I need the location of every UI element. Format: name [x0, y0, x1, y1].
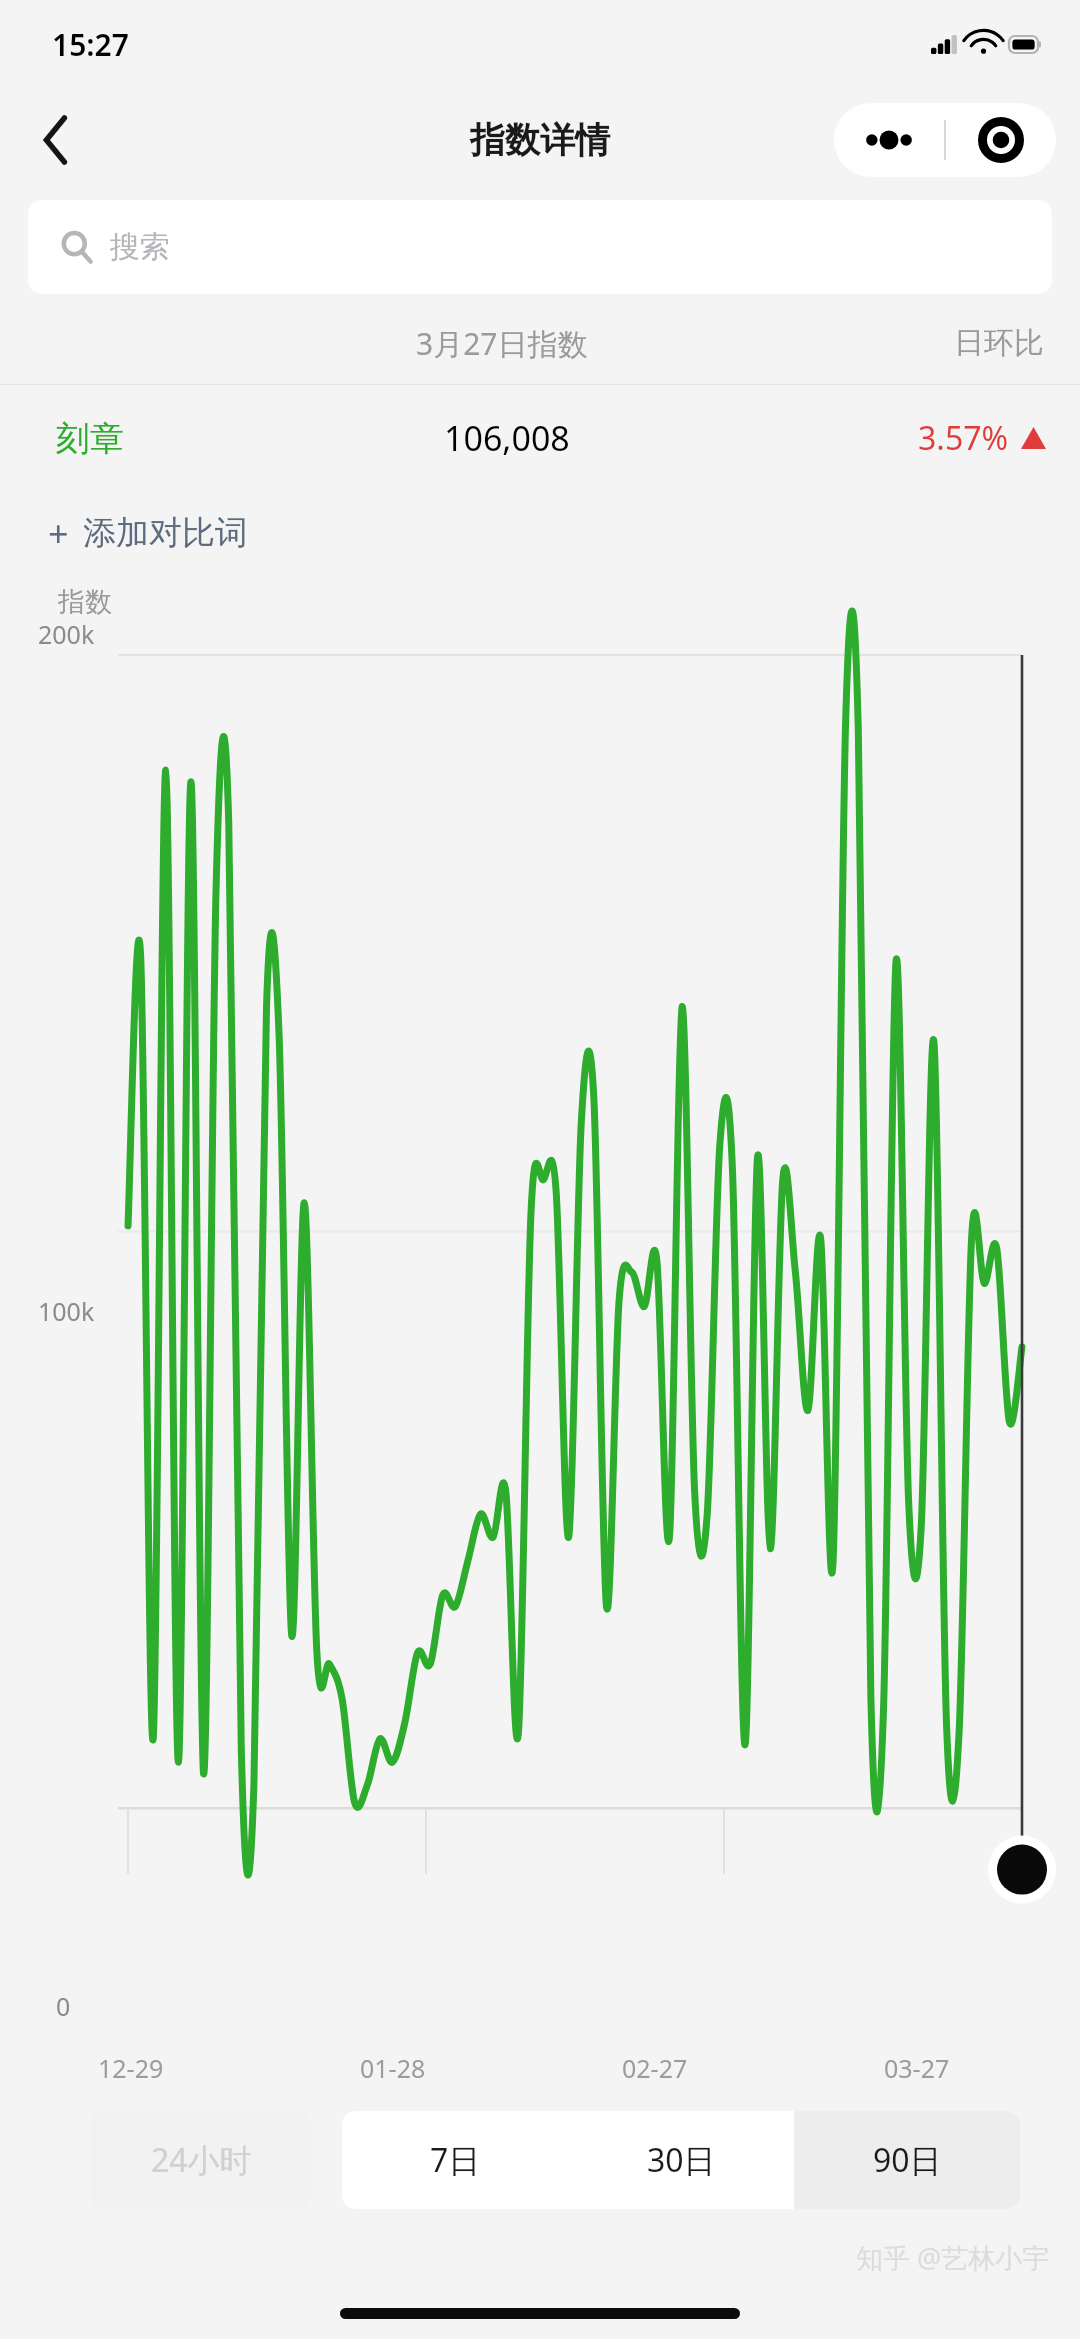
button[interactable]: Back: [18, 102, 94, 178]
staticText: 搜索: [110, 228, 170, 266]
staticText: 03-27: [884, 2051, 950, 2085]
staticText: 24小时: [151, 2138, 252, 2182]
staticText: 02-27: [622, 2051, 688, 2085]
staticText: 知乎 @艺林小宇: [856, 2239, 1050, 2276]
staticText: 0: [56, 1989, 71, 2023]
staticText: 3月27日指数: [416, 323, 588, 364]
button[interactable]: 30日: [568, 2111, 794, 2209]
button[interactable]: 24小时: [90, 2111, 312, 2209]
button[interactable]: More options: [834, 103, 944, 177]
staticText: 15:27: [52, 24, 129, 65]
staticText: 106,008: [444, 415, 570, 461]
staticText: 指数详情: [470, 118, 610, 162]
staticText: 添加对比词: [83, 512, 248, 554]
staticText: 200k: [38, 617, 95, 651]
button[interactable]: 刻章: [0, 385, 1080, 491]
button[interactable]: +: [48, 491, 248, 575]
staticText: 3.57%: [918, 416, 1009, 460]
staticText: 30日: [647, 2138, 716, 2182]
staticText: +: [48, 509, 69, 558]
button[interactable]: Target: [946, 103, 1056, 177]
staticText: 指数: [58, 585, 112, 619]
button[interactable]: 7日: [342, 2111, 568, 2209]
staticText: 12-29: [98, 2051, 164, 2085]
button[interactable]: 搜索: [28, 200, 1052, 294]
staticText: 日环比: [954, 324, 1044, 362]
staticText: 7日: [430, 2138, 481, 2182]
button[interactable]: 90日: [794, 2111, 1020, 2209]
staticText: 100k: [38, 1294, 95, 1328]
staticText: 01-28: [360, 2051, 426, 2085]
staticText: 90日: [873, 2138, 942, 2182]
staticText: 刻章: [56, 417, 124, 460]
